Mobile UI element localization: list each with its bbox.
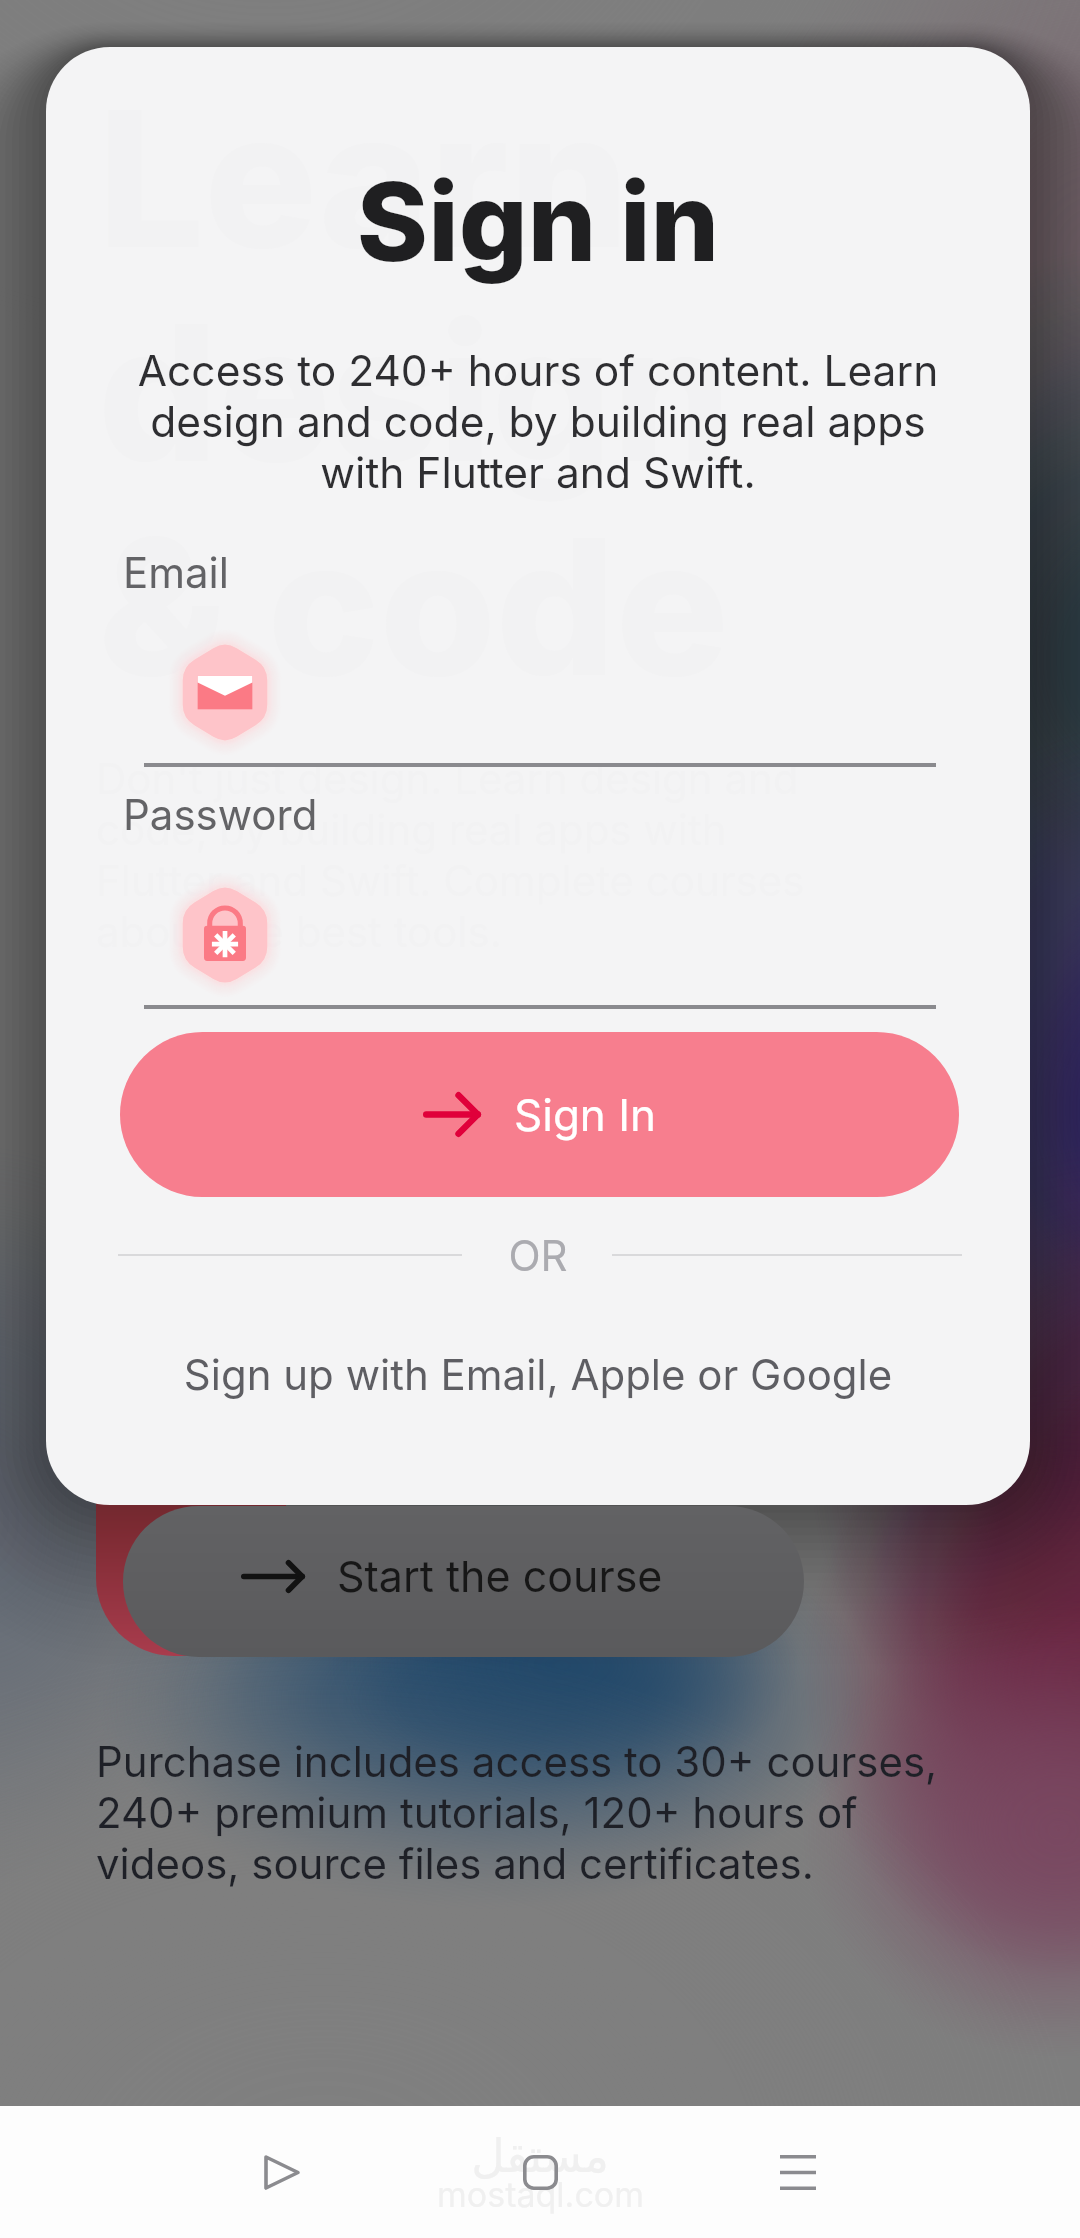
staticText: مستقل (471, 2129, 609, 2183)
staticText: mostaql.com (437, 2174, 644, 2215)
staticText: Sign in (46, 156, 1030, 287)
staticText: Email (123, 547, 229, 598)
staticText: Purchase includes access to 30+ courses,… (96, 1736, 956, 1889)
staticText: Password (123, 789, 318, 840)
staticText: Start the course (337, 1550, 663, 1602)
button[interactable]: Recent apps (732, 2106, 864, 2238)
staticText: Sign In (514, 1088, 657, 1141)
button[interactable]: Back (216, 2106, 348, 2238)
button[interactable]: Home (474, 2106, 606, 2238)
button[interactable]: Sign up with Email, Apple or Google (46, 1349, 1030, 1400)
button[interactable]: Start the course (123, 1506, 804, 1657)
staticText: OR (46, 1230, 1030, 1281)
staticText: Learn design & code (98, 65, 732, 721)
staticText: Don't just design. Learn design and code… (96, 753, 826, 957)
button[interactable]: Sign In (120, 1032, 959, 1197)
staticText: Access to 240+ hours of content. Learn d… (118, 345, 958, 498)
